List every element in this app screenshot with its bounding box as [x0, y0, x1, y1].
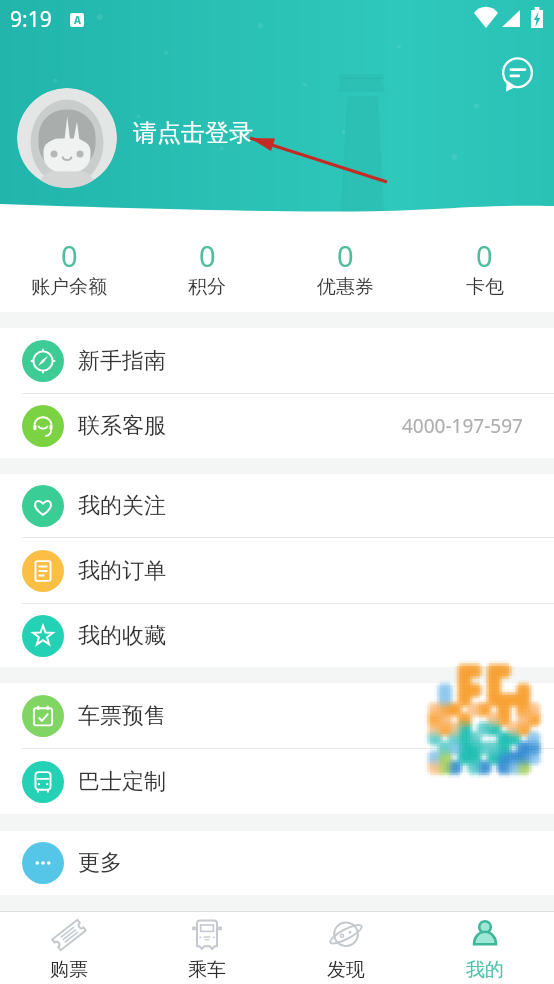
button[interactable]: 乘车 — [138, 912, 276, 984]
button[interactable]: 我的订单 — [0, 538, 554, 603]
button[interactable]: 发现 — [276, 912, 415, 984]
button[interactable]: Messages — [497, 54, 537, 94]
staticText: 我的订单 — [78, 557, 166, 585]
staticText: 账户余额 — [31, 275, 107, 299]
button[interactable]: 车票预售 — [0, 683, 554, 748]
staticText: 新手指南 — [78, 347, 166, 375]
staticText: 9:19 — [10, 5, 52, 34]
staticText: 积分 — [188, 275, 226, 299]
staticText: 联系客服 — [78, 412, 166, 440]
staticText: 车票预售 — [78, 702, 166, 730]
button[interactable]: 新手指南 — [0, 328, 554, 393]
staticText: 4000-197-597 — [402, 413, 523, 439]
staticText: 卡包 — [466, 275, 504, 299]
button[interactable]: Avatar — [17, 88, 117, 188]
staticText: 0 — [337, 236, 354, 275]
staticText: 0 — [61, 236, 78, 275]
staticText: 我的关注 — [78, 492, 166, 520]
button[interactable]: 请点击登录 — [133, 118, 253, 148]
staticText: 巴士定制 — [78, 768, 166, 796]
staticText: A — [74, 13, 81, 27]
staticText: 我的 — [466, 958, 504, 982]
staticText: 请点击登录 — [133, 118, 253, 148]
button[interactable]: 我的关注 — [0, 474, 554, 537]
staticText: 发现 — [327, 958, 365, 982]
staticText: 0 — [476, 236, 493, 275]
button[interactable]: 我的收藏 — [0, 604, 554, 667]
staticText: 更多 — [78, 849, 122, 877]
button[interactable]: 0 — [0, 212, 138, 312]
button[interactable]: 联系客服 — [0, 394, 554, 458]
button[interactable]: 0 — [138, 212, 276, 312]
button[interactable]: 巴士定制 — [0, 749, 554, 814]
button[interactable]: 购票 — [0, 912, 138, 984]
button[interactable]: 0 — [415, 212, 554, 312]
button[interactable]: 更多 — [0, 831, 554, 895]
button[interactable]: 我的 — [415, 912, 554, 984]
staticText: 购票 — [50, 958, 88, 982]
staticText: 优惠券 — [317, 275, 374, 299]
staticText: 我的收藏 — [78, 622, 166, 650]
staticText: 0 — [199, 236, 216, 275]
staticText: 乘车 — [188, 958, 226, 982]
button[interactable]: 0 — [276, 212, 415, 312]
